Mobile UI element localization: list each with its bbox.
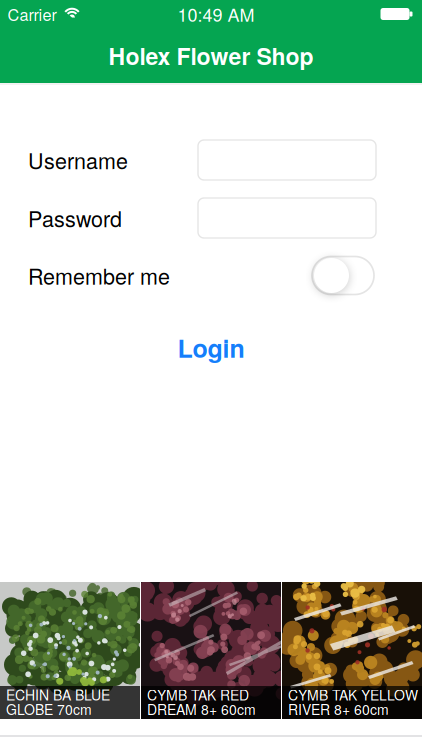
staticText: Login [177, 330, 244, 365]
staticText: Password [28, 203, 122, 233]
staticText: GLOBE 70cm [6, 699, 92, 719]
button[interactable]: Remember me [312, 256, 374, 294]
staticText: ECHIN BA BLUE [6, 684, 110, 704]
staticText: Holex Flower Shop [108, 39, 313, 72]
staticText: 10:49 AM [177, 1, 254, 27]
staticText: RIVER 8+ 60cm [288, 699, 389, 719]
button[interactable]: CYMB TAK YELLOW [282, 582, 422, 719]
button[interactable]: Username text field [198, 140, 376, 180]
staticText: Carrier [7, 2, 56, 26]
button[interactable]: Password text field [198, 198, 376, 238]
staticText: CYMB TAK YELLOW [288, 684, 418, 704]
button[interactable]: ECHIN BA BLUE [0, 582, 140, 719]
button[interactable]: CYMB TAK RED [141, 582, 281, 719]
staticText: DREAM 8+ 60cm [147, 699, 256, 719]
button[interactable]: Login [177, 330, 244, 365]
staticText: Username [28, 145, 128, 175]
staticText: CYMB TAK RED [147, 684, 249, 704]
staticText: Remember me [28, 260, 170, 291]
